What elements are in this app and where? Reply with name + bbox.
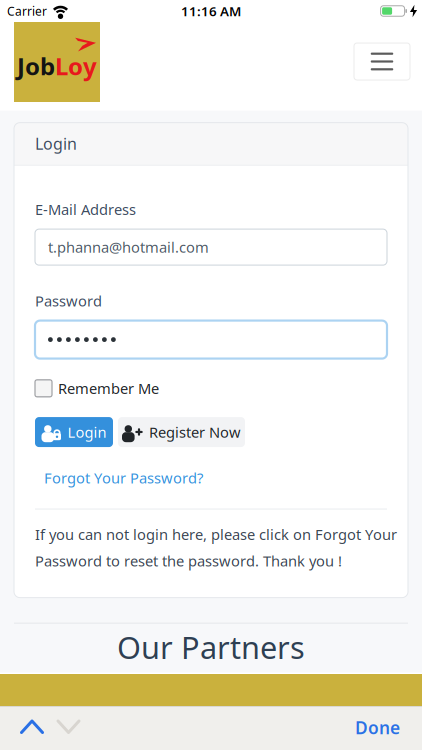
button[interactable]: Password [35,321,387,359]
staticText: Job [17,50,55,82]
button[interactable]: Next field [58,721,79,732]
button[interactable]: Remember Me [35,379,159,398]
button[interactable]: Previous field [21,721,42,732]
staticText: If you can not login here, please click … [35,524,397,544]
button[interactable]: E-Mail Address [35,229,387,265]
staticText: E-Mail Address [35,200,136,219]
staticText: Done [355,716,400,739]
button[interactable]: Menu [354,43,410,80]
staticText: t.phanna@hotmail.com [48,237,209,257]
staticText: Login [67,422,106,442]
button[interactable]: Done [355,716,400,739]
staticText: Login [35,133,77,154]
staticText: Loy [55,50,97,82]
button[interactable]: Login [35,417,113,447]
button[interactable]: Register Now [118,417,245,447]
staticText: Carrier [7,3,47,19]
staticText: Forgot Your Password? [44,468,203,488]
button[interactable]: Forgot Your Password? [35,468,203,488]
staticText: Password to reset the password. Thank yo… [35,551,342,570]
staticText: 11:16 AM [181,2,241,20]
staticText: Remember Me [58,379,159,398]
staticText: Our Partners [117,627,305,667]
staticText: Register Now [149,422,241,442]
staticText: Password [35,291,102,311]
